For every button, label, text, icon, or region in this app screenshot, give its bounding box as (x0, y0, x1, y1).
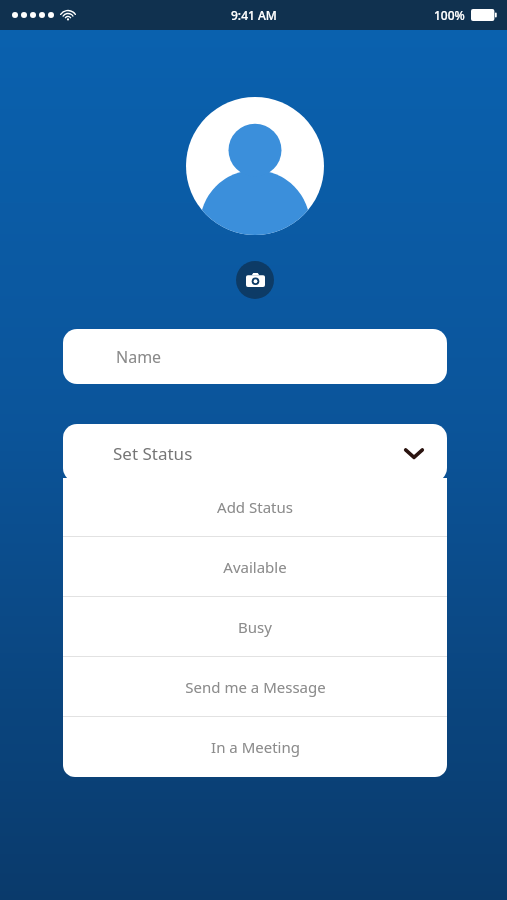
staticText: In a Meeting (211, 737, 300, 757)
button[interactable]: In a Meeting (63, 717, 447, 776)
staticText: Available (223, 557, 287, 577)
button[interactable]: Add Status (63, 478, 447, 536)
staticText: 9:41 AM (231, 7, 277, 23)
staticText: Send me a Message (185, 677, 326, 697)
button[interactable]: Set Status (63, 424, 447, 482)
staticText: Name (116, 346, 162, 368)
staticText: Set Status (113, 442, 193, 465)
button[interactable]: Name (63, 329, 447, 384)
staticText: Busy (238, 617, 272, 637)
button[interactable]: Send me a Message (63, 657, 447, 716)
button[interactable]: Available (63, 537, 447, 596)
button[interactable]: Change photo (236, 261, 274, 299)
button[interactable]: Profile photo (186, 97, 324, 235)
button[interactable]: Busy (63, 597, 447, 656)
staticText: 100% (434, 7, 465, 23)
staticText: Add Status (217, 497, 293, 517)
